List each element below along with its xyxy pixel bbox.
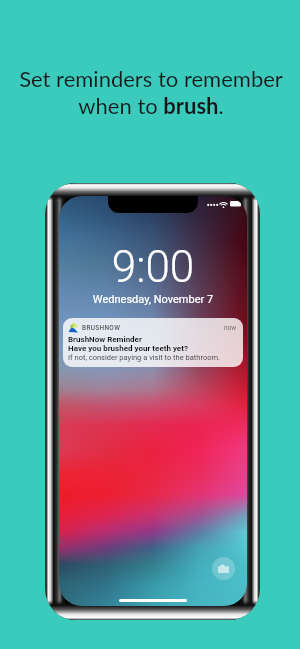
- staticText: If not, consider paying a visit to the b…: [68, 353, 220, 362]
- staticText: BrushNow Reminder: [68, 335, 142, 344]
- staticText: Set reminders to remember when to brush.: [6, 65, 296, 119]
- button[interactable]: Camera: [212, 557, 235, 580]
- button[interactable]: BRUSHNOW: [63, 318, 243, 367]
- staticText: now: [224, 324, 237, 332]
- staticText: 9:00: [59, 241, 247, 293]
- staticText: Wednesday, November 7: [59, 293, 247, 306]
- staticText: Have you brushed your teeth yet?: [68, 344, 188, 353]
- staticText: BRUSHNOW: [82, 324, 121, 332]
